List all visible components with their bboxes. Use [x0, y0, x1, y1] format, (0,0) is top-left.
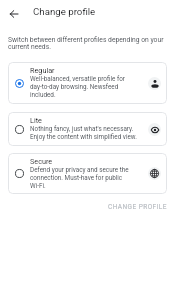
staticText: Lite	[30, 115, 42, 125]
staticText: Defend your privacy and secure the conne…	[30, 166, 129, 190]
staticText: CHANGE PROFILE	[108, 203, 167, 210]
staticText: Well-balanced, versatile profile for day…	[30, 75, 125, 99]
button[interactable]: Back	[2, 2, 25, 25]
button[interactable]: Regular	[8, 62, 167, 104]
button[interactable]: CHANGE PROFILE	[104, 199, 171, 214]
button[interactable]: Lite	[8, 112, 167, 146]
staticText: Nothing fancy, just what's necessary. En…	[30, 125, 137, 141]
staticText: Regular	[30, 65, 55, 75]
button[interactable]: Secure	[8, 153, 167, 194]
staticText: Switch between different profiles depend…	[8, 36, 165, 50]
staticText: Secure	[30, 156, 53, 166]
staticText: Change profile	[33, 5, 96, 18]
